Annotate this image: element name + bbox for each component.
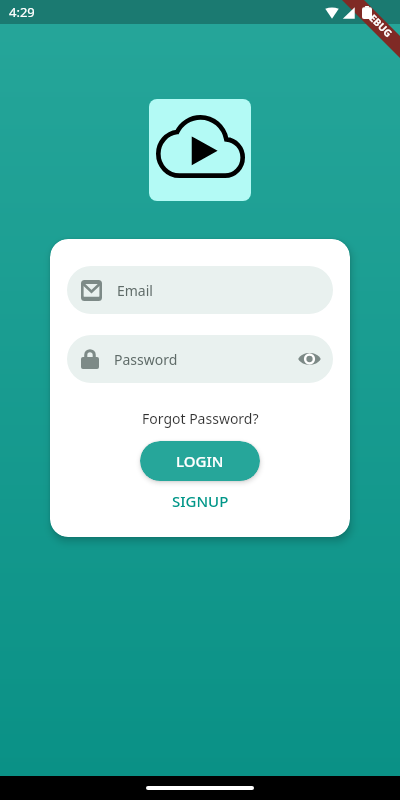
button[interactable]: Show password (296, 346, 322, 372)
staticText: SIGNUP (172, 491, 229, 511)
button[interactable]: Email (67, 266, 333, 314)
staticText: Email (117, 281, 153, 300)
staticText: Password (114, 350, 296, 369)
button[interactable]: LOGIN (140, 441, 260, 481)
staticText: LOGIN (176, 451, 224, 471)
staticText: 4:29 (9, 3, 35, 21)
button[interactable]: SIGNUP (168, 487, 233, 515)
staticText: Forgot Password? (142, 409, 259, 428)
staticText: DEBUG (361, 6, 396, 40)
button[interactable]: Forgot Password? (138, 405, 263, 432)
button[interactable]: Password (67, 335, 333, 383)
